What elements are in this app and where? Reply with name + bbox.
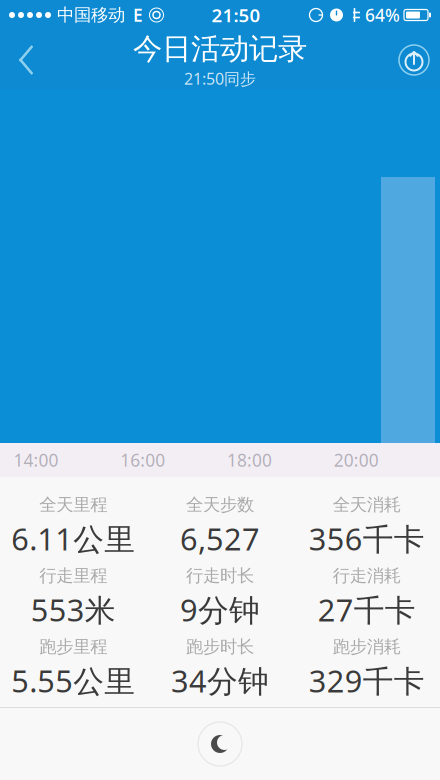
staticText: 356千卡 (309, 518, 425, 559)
button[interactable]: 睡眠 (184, 708, 256, 780)
staticText: 5.55公里 (11, 660, 135, 701)
staticText: 553米 (31, 589, 116, 630)
staticText: 6.11公里 (11, 518, 135, 559)
staticText: 全天里程 (39, 494, 107, 515)
staticText: 全天步数 (186, 494, 254, 515)
staticText: E (133, 3, 143, 26)
staticText: 行走消耗 (333, 565, 401, 586)
staticText: 34分钟 (171, 660, 269, 701)
staticText: 全天消耗 (333, 494, 401, 515)
button[interactable]: 同步 (388, 32, 440, 88)
staticText: 行走里程 (39, 565, 107, 586)
staticText: 18:00 (227, 448, 272, 471)
staticText: 14:00 (13, 448, 58, 471)
staticText: 今日活动记录 (133, 31, 307, 67)
staticText: 跑步消耗 (333, 636, 401, 657)
staticText: 跑步时长 (186, 636, 254, 657)
staticText: 64% (365, 3, 400, 26)
staticText: 16:00 (120, 448, 165, 471)
staticText: 329千卡 (309, 660, 425, 701)
staticText: 21:50同步 (184, 68, 256, 89)
staticText: 20:00 (334, 448, 379, 471)
staticText: 6,527 (180, 518, 260, 559)
staticText: 中国移动 (57, 4, 125, 26)
staticText: 跑步里程 (39, 636, 107, 657)
staticText: 27千卡 (318, 589, 416, 630)
staticText: 行走时长 (186, 565, 254, 586)
staticText: 21:50 (211, 3, 260, 27)
button[interactable]: 返回 (0, 32, 52, 88)
staticText: 9分钟 (180, 589, 260, 630)
